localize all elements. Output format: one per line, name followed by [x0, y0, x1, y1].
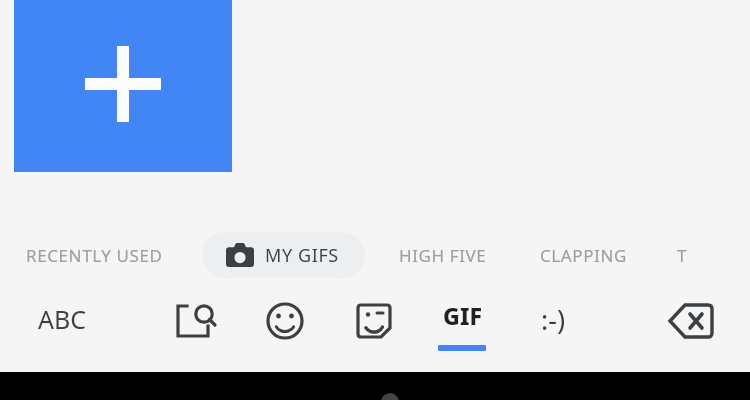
button[interactable]: HIGH FIVE: [399, 232, 487, 278]
button[interactable]: RECENTLY USED: [26, 232, 163, 278]
button[interactable]: Create new GIF: [14, 0, 232, 172]
staticText: ABC: [38, 302, 87, 336]
staticText: MY GIFS: [265, 243, 339, 268]
staticText: RECENTLY USED: [26, 244, 163, 267]
button[interactable]: CLAPPING: [540, 232, 627, 278]
button[interactable]: Backspace: [660, 290, 722, 352]
button[interactable]: Search GIFs: [164, 290, 226, 352]
staticText: GIF: [443, 300, 482, 331]
button[interactable]: GIF: [426, 288, 498, 358]
staticText: HIGH FIVE: [399, 244, 487, 267]
button[interactable]: ABC: [12, 288, 112, 350]
button[interactable]: Emoji: [254, 290, 316, 352]
button[interactable]: Stickers: [343, 290, 405, 352]
staticText: T: [677, 244, 688, 267]
staticText: :-): [541, 301, 566, 338]
button[interactable]: :-): [518, 288, 588, 350]
button[interactable]: MY GIFS: [202, 232, 365, 278]
staticText: CLAPPING: [540, 244, 627, 267]
button[interactable]: T: [677, 232, 688, 278]
